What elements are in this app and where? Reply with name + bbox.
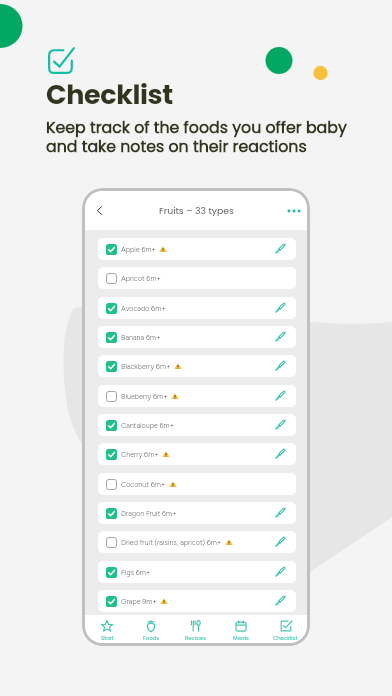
- staticText: Apple 6m+: [121, 245, 156, 254]
- button[interactable]: Foods: [129, 615, 173, 644]
- button[interactable]: Start: [85, 615, 129, 644]
- button[interactable]: Cherry 6m+: [98, 443, 296, 465]
- staticText: Cantaloupe 6m+: [121, 421, 175, 430]
- staticText: Blueberry 6m+: [121, 392, 168, 401]
- staticText: Coconut 6m+: [121, 480, 166, 489]
- staticText: Figs 6m+: [121, 568, 151, 577]
- button[interactable]: Coconut 6m+: [98, 473, 296, 495]
- button[interactable]: Checklist: [263, 615, 308, 644]
- button[interactable]: Blueberry 6m+: [98, 385, 296, 407]
- staticText: Recipes: [185, 634, 207, 640]
- button[interactable]: Dragon Fruit 6m+: [98, 502, 296, 524]
- button[interactable]: Dried fruit (raisins, apricot) 6m+: [98, 531, 296, 553]
- staticText: Fruits – 33 types: [106, 204, 287, 217]
- button[interactable]: Grape 9m+: [98, 590, 296, 612]
- staticText: Checklist: [273, 634, 298, 640]
- staticText: Banana 6m+: [121, 333, 161, 342]
- staticText: Meals: [233, 634, 249, 640]
- staticText: Avocado 6m+: [121, 304, 166, 313]
- button[interactable]: Avocado 6m+: [98, 297, 296, 319]
- staticText: Checklist: [46, 76, 173, 114]
- staticText: Keep track of the foods you offer baby a…: [46, 116, 347, 157]
- button[interactable]: Blackberry 6m+: [98, 355, 296, 377]
- button[interactable]: Apple 6m+: [98, 238, 296, 260]
- button[interactable]: More options: [287, 204, 301, 218]
- staticText: Foods: [143, 634, 160, 640]
- button[interactable]: Back: [93, 204, 106, 217]
- button[interactable]: Recipes: [173, 615, 218, 644]
- button[interactable]: Meals: [218, 615, 263, 644]
- button[interactable]: Apricot 6m+: [98, 267, 296, 289]
- staticText: Dried fruit (raisins, apricot) 6m+: [121, 538, 222, 547]
- staticText: Blackberry 6m+: [121, 362, 171, 371]
- staticText: Start: [101, 634, 114, 640]
- staticText: Apricot 6m+: [121, 274, 161, 283]
- staticText: Grape 9m+: [121, 597, 157, 606]
- button[interactable]: Cantaloupe 6m+: [98, 414, 296, 436]
- staticText: Dragon Fruit 6m+: [121, 509, 177, 518]
- button[interactable]: Figs 6m+: [98, 561, 296, 583]
- staticText: Cherry 6m+: [121, 450, 159, 459]
- button[interactable]: Banana 6m+: [98, 326, 296, 348]
